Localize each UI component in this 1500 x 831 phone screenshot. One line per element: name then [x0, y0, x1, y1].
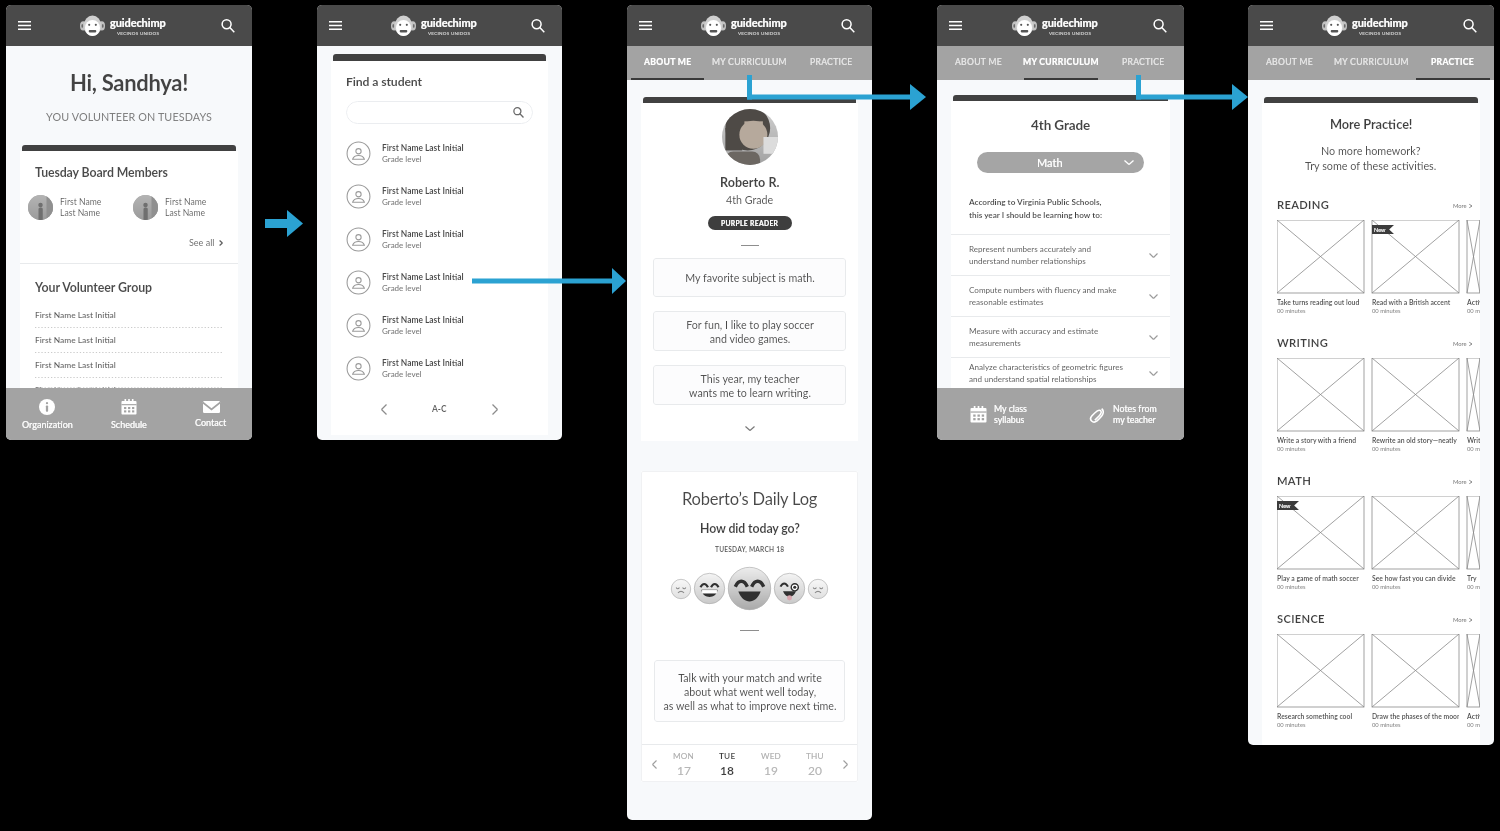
other: Menu: [639, 21, 652, 30]
button[interactable]: See all: [20, 237, 223, 248]
button[interactable]: Menu: [627, 5, 664, 46]
staticText: PRACTICE: [810, 57, 853, 67]
staticText: Read with a British accent: [1372, 298, 1459, 306]
staticText: TUESDAY, MARCH 18: [715, 545, 785, 553]
staticText: Grade level: [382, 326, 422, 336]
button[interactable]: PRACTICE: [1412, 46, 1494, 80]
button[interactable]: THU: [793, 745, 837, 782]
button[interactable]: First Name Last Initial: [346, 261, 548, 304]
button[interactable]: Mood option 2: [728, 567, 771, 610]
button[interactable]: First Name Last Initial: [346, 304, 548, 347]
button[interactable]: Previous day: [646, 756, 662, 772]
button[interactable]: Search: [513, 5, 562, 46]
button[interactable]: Compute numbers with fluency and make re…: [969, 276, 1158, 316]
staticText: Write a story with a friend: [1277, 436, 1364, 444]
button[interactable]: Next day: [837, 756, 853, 772]
staticText: VECINOS UNIDOS: [1049, 30, 1092, 36]
staticText: My favorite subject is math.: [685, 271, 815, 284]
staticText: MY CURRICULUM: [1334, 57, 1409, 67]
button[interactable]: ABOUT ME: [1248, 46, 1330, 80]
staticText: First Name Last Initial: [382, 143, 464, 153]
staticText: No more homework?: [1321, 144, 1421, 157]
button[interactable]: WED: [749, 745, 793, 782]
staticText: VECINOS UNIDOS: [738, 30, 781, 36]
button[interactable]: More: [1453, 340, 1472, 347]
button[interactable]: Mood option 3: [774, 573, 805, 604]
button[interactable]: First Name Last Initial: [346, 175, 548, 218]
button[interactable]: Mood option 4: [808, 579, 828, 599]
staticText: First Name Last Initial: [35, 335, 116, 345]
button[interactable]: Menu: [937, 5, 974, 46]
button[interactable]: More: [1453, 616, 1472, 623]
staticText: How did today go?: [700, 521, 800, 536]
button[interactable]: Contact: [170, 388, 252, 440]
button[interactable]: Measure with accuracy and estimate measu…: [969, 317, 1158, 357]
staticText: Rewrite an old story—neatly: [1372, 436, 1459, 444]
button[interactable]: TUE: [705, 745, 749, 782]
button[interactable]: Search: [203, 5, 252, 46]
button[interactable]: Notes from: [1060, 388, 1184, 440]
staticText: Try some of these activities.: [1305, 159, 1437, 172]
button[interactable]: This year, my teacher wants me to learn …: [653, 365, 846, 405]
button[interactable]: Menu: [6, 5, 43, 46]
button[interactable]: Search: [346, 101, 533, 124]
staticText: guidechimp: [731, 16, 787, 29]
staticText: Grade level: [382, 197, 422, 207]
button[interactable]: MY CURRICULUM: [1330, 46, 1412, 80]
staticText: guidechimp: [421, 16, 477, 29]
button[interactable]: Math: [977, 152, 1144, 173]
button[interactable]: PURPLE READER: [708, 216, 792, 230]
staticText: First Name Last Initial: [382, 186, 464, 196]
button[interactable]: First Name Last Initial: [346, 218, 548, 261]
staticText: 00 minutes: [1277, 307, 1306, 314]
button[interactable]: Analyze characteristics of geometric fig…: [969, 358, 1158, 388]
staticText: 00 minutes: [1372, 307, 1401, 314]
button[interactable]: Schedule: [88, 388, 170, 440]
button[interactable]: First Name Last Initial: [346, 132, 548, 175]
button[interactable]: MY CURRICULUM: [708, 46, 790, 80]
staticText: 17: [677, 763, 691, 777]
button[interactable]: Menu: [1248, 5, 1285, 46]
staticText: ABOUT ME: [644, 57, 692, 67]
button[interactable]: ABOUT ME: [937, 46, 1020, 80]
staticText: First Name Last Initial: [382, 229, 464, 239]
button[interactable]: ABOUT ME: [627, 46, 708, 80]
staticText: PURPLE READER: [721, 219, 779, 227]
staticText: SCIENCE: [1277, 612, 1325, 625]
button[interactable]: MON: [662, 745, 705, 782]
button[interactable]: Previous page: [373, 398, 395, 420]
button[interactable]: PRACTICE: [790, 46, 872, 80]
other: Menu: [18, 21, 31, 30]
staticText: ABOUT ME: [955, 57, 1002, 67]
button[interactable]: Menu: [317, 5, 354, 46]
button[interactable]: Search: [823, 5, 872, 46]
button[interactable]: Search: [1445, 5, 1494, 46]
staticText: YOU VOLUNTEER ON TUESDAYS: [6, 110, 252, 123]
button[interactable]: My favorite subject is math.: [653, 258, 846, 297]
button[interactable]: Mood option 1: [694, 573, 725, 604]
staticText: More Practice!: [1330, 116, 1413, 131]
button[interactable]: Next page: [484, 398, 506, 420]
staticText: More: [1453, 478, 1467, 485]
button[interactable]: More: [1453, 478, 1472, 485]
staticText: Last Name: [165, 208, 205, 218]
button[interactable]: For fun, I like to play soccer and video…: [653, 311, 846, 351]
button[interactable]: Show more: [742, 420, 758, 436]
other: Menu: [949, 21, 962, 30]
staticText: Roberto’s Daily Log: [682, 489, 818, 509]
staticText: my teacher: [1113, 414, 1156, 425]
staticText: Activity: [1467, 712, 1480, 720]
button[interactable]: My class: [937, 388, 1060, 440]
button[interactable]: MY CURRICULUM: [1020, 46, 1102, 80]
button[interactable]: Represent numbers accurately and underst…: [969, 235, 1158, 275]
button[interactable]: Organization: [6, 388, 88, 440]
staticText: First Name Last Initial: [382, 315, 464, 325]
button[interactable]: First Name Last Initial: [346, 347, 548, 390]
button[interactable]: Search: [1135, 5, 1184, 46]
staticText: More: [1453, 202, 1467, 209]
button[interactable]: Talk with your match and write about wha…: [654, 660, 845, 722]
button[interactable]: Mood option 0: [671, 579, 691, 599]
button[interactable]: PRACTICE: [1102, 46, 1184, 80]
staticText: Roberto R.: [720, 175, 780, 190]
button[interactable]: More: [1453, 202, 1472, 209]
